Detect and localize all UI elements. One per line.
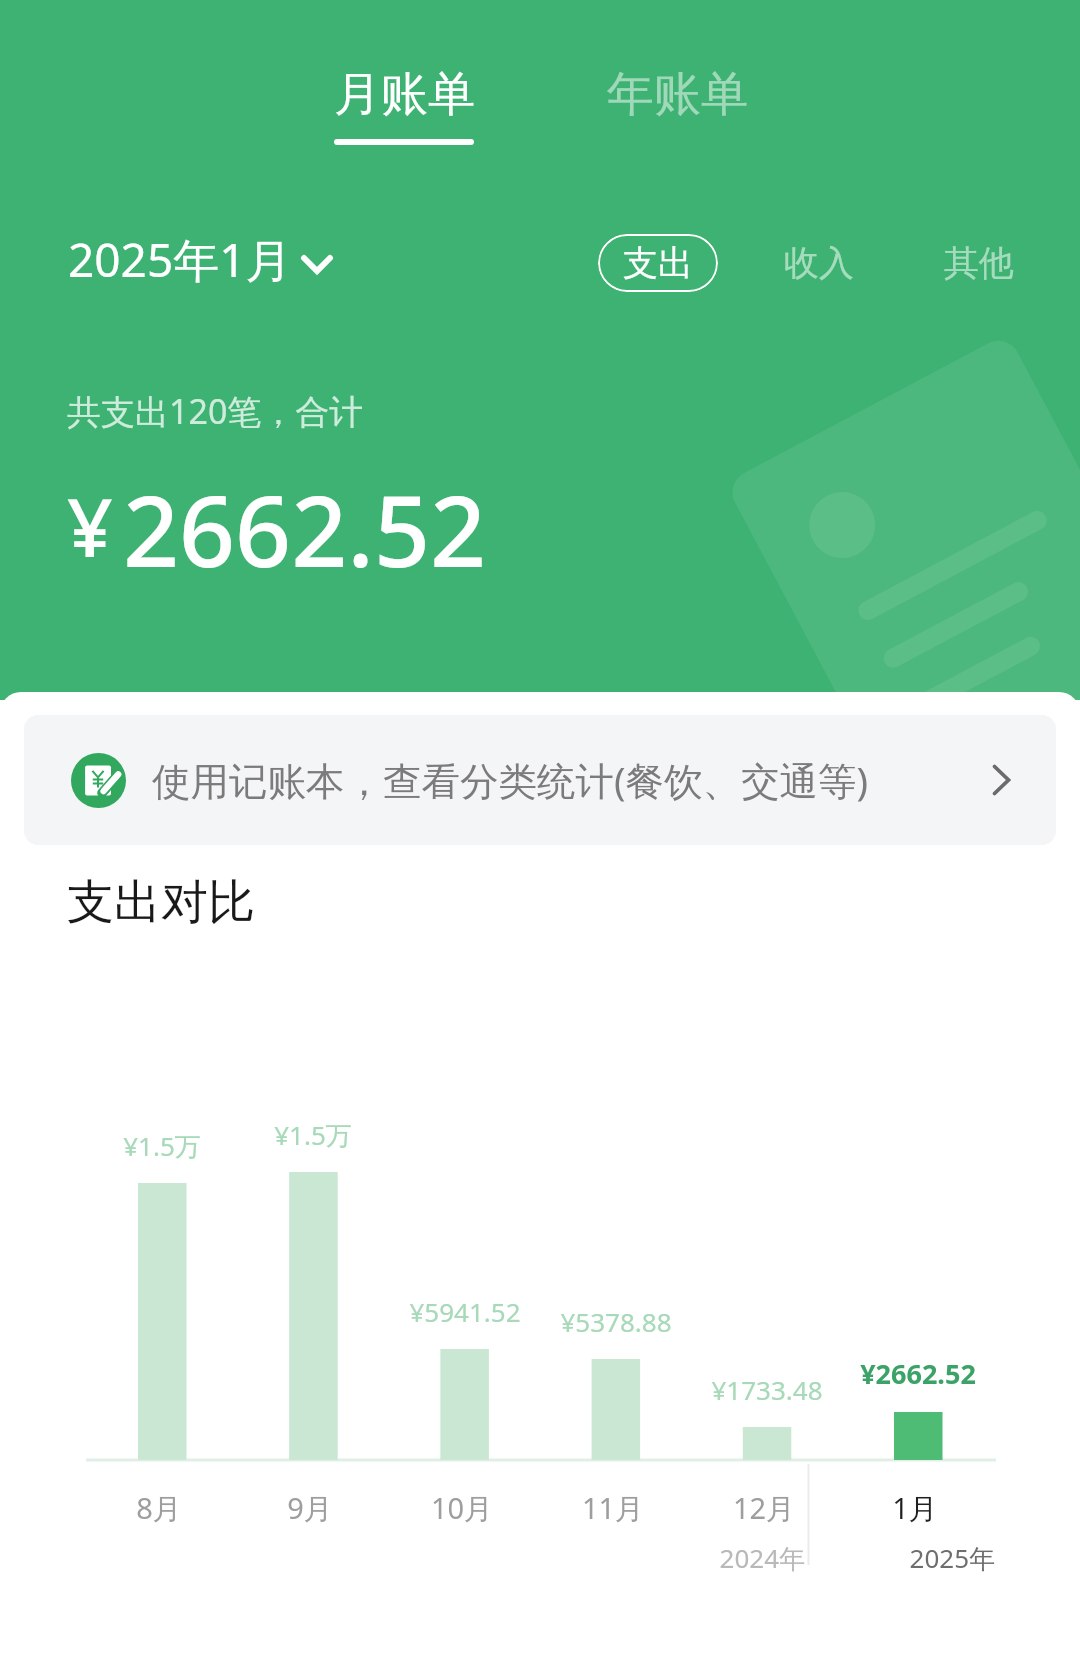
staticText: 12月 bbox=[644, 1488, 884, 1528]
staticText: 支出 bbox=[623, 241, 693, 285]
button[interactable]: 收入 bbox=[784, 234, 854, 292]
staticText: 9月 bbox=[190, 1488, 430, 1528]
button[interactable]: 使用记账本，查看分类统计(餐饮、交通等) bbox=[24, 715, 1056, 845]
staticText: ¥5941.52 bbox=[345, 1294, 585, 1329]
staticText: 1月 bbox=[795, 1488, 1035, 1528]
staticText: ¥2662.52 bbox=[798, 1355, 1038, 1392]
staticText: 2024年 bbox=[600, 1540, 805, 1576]
staticText: 2662.52 bbox=[123, 462, 486, 595]
staticText: 共支出120笔，合计 bbox=[67, 388, 364, 434]
staticText: 11月 bbox=[493, 1488, 733, 1528]
button[interactable]: 年账单 bbox=[593, 65, 761, 139]
button[interactable]: 支出 bbox=[598, 234, 718, 292]
staticText: ¥1.5万 bbox=[193, 1117, 433, 1153]
staticText: 支出对比 bbox=[67, 873, 255, 932]
button[interactable]: 2025年1月 bbox=[60, 224, 343, 295]
staticText: ¥1.5万 bbox=[42, 1128, 282, 1164]
staticText: 10月 bbox=[342, 1488, 582, 1528]
staticText: 其他 bbox=[944, 241, 1014, 285]
staticText: 8月 bbox=[39, 1488, 279, 1528]
button[interactable]: 月账单 bbox=[320, 65, 488, 145]
staticText: 使用记账本，查看分类统计(餐饮、交通等) bbox=[152, 754, 869, 807]
staticText: ¥5378.88 bbox=[496, 1304, 736, 1339]
staticText: ¥ bbox=[67, 471, 113, 580]
staticText: 收入 bbox=[784, 241, 854, 285]
staticText: 月账单 bbox=[334, 65, 475, 124]
staticText: ¥1733.48 bbox=[647, 1372, 887, 1407]
other: 查看分类统计 bbox=[981, 761, 1019, 799]
staticText: 年账单 bbox=[607, 65, 748, 124]
button[interactable]: 其他 bbox=[944, 234, 1014, 292]
staticText: 2025年1月 bbox=[68, 228, 292, 291]
staticText: 2025年 bbox=[790, 1540, 995, 1576]
